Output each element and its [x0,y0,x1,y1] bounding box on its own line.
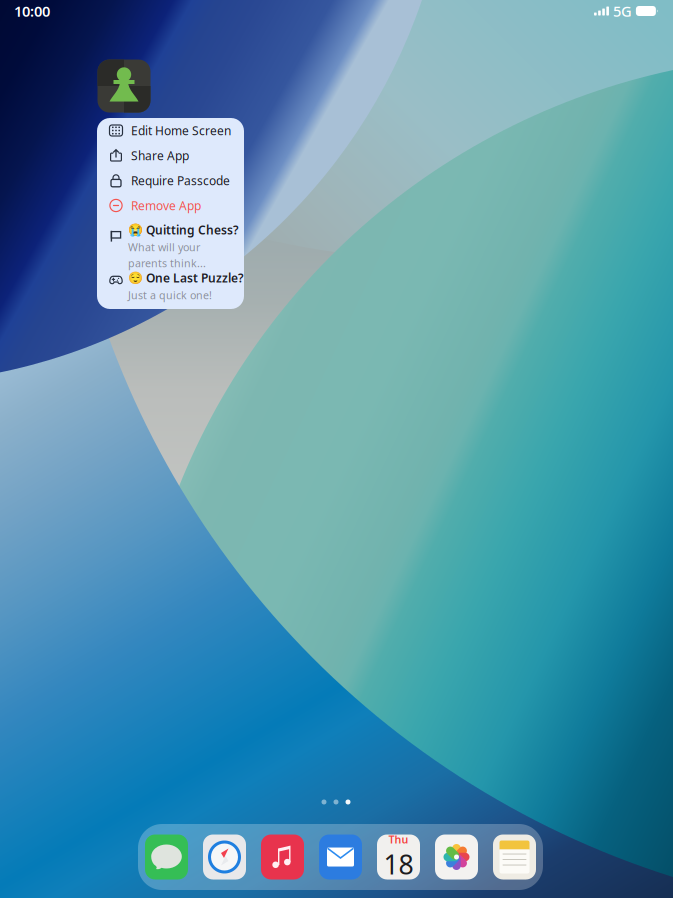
staticText: One Last Puzzle? [146,270,244,286]
button[interactable]: Remove App [97,193,244,218]
button[interactable]: App [493,834,536,879]
staticText: 18 [383,846,413,882]
staticText: 5G [613,1,632,21]
button[interactable]: Share App [97,143,244,168]
button[interactable]: 😭 [97,218,244,266]
staticText: Thu [388,832,408,846]
staticText: 😭 [128,223,143,237]
staticText: Quitting Chess? [146,222,239,238]
button[interactable]: App [435,834,478,879]
button[interactable]: App [261,834,304,879]
button[interactable]: 😌 [97,266,244,303]
staticText: Edit Home Screen [131,122,231,138]
staticText: 10:00 [14,1,50,21]
button[interactable]: App [319,834,362,879]
staticText: Chess [107,116,141,132]
staticText: Just a quick one! [128,288,212,302]
staticText: Require Passcode [131,172,230,188]
button[interactable]: App [145,834,188,879]
button[interactable]: Chess [97,59,150,132]
staticText: 😌 [128,271,143,285]
button[interactable]: App [203,834,246,879]
button[interactable]: Require Passcode [97,168,244,193]
staticText: Share App [131,147,189,163]
staticText: Remove App [131,197,201,213]
button[interactable]: App [377,834,420,879]
button[interactable]: Edit Home Screen [97,118,244,143]
staticText: parents think... [128,256,206,270]
staticText: What will your [128,240,200,254]
